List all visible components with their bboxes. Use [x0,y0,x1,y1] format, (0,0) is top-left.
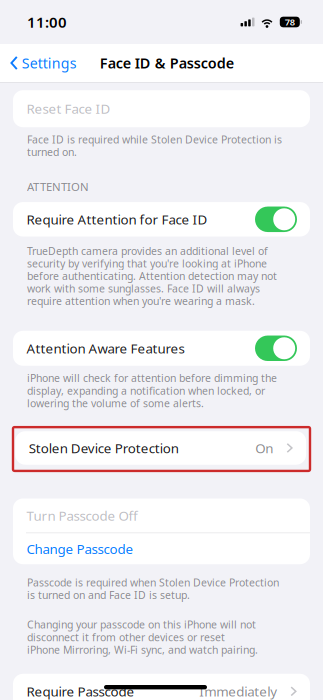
staticText: Reset Face ID [26,100,110,117]
staticText: ATTENTION [27,179,89,194]
staticText: 11:00 [27,12,67,32]
staticText: Stolen Device Protection [29,439,179,457]
staticText: Attention Aware Features [26,340,184,357]
button[interactable]: Require Passcode [13,674,310,700]
button[interactable]: Turn Passcode Off [13,498,310,532]
staticText: On [255,439,273,457]
staticText: Turn Passcode Off [26,507,137,524]
staticText: Passcode is required when Stolen Device … [27,576,279,601]
staticText: Change Passcode [26,540,133,557]
staticText: Require Passcode [26,683,134,700]
button[interactable]: Reset Face ID [13,90,310,127]
staticText: 78 [285,16,295,28]
staticText: TrueDepth camera provides an additional … [27,245,277,307]
button[interactable]: Change Passcode [13,533,310,564]
staticText: Changing your passcode on this iPhone wi… [27,618,258,656]
staticText: Require Attention for Face ID [26,211,207,228]
button[interactable]: Stolen Device Protection [15,431,306,465]
staticText: Face ID & Passcode [100,54,234,72]
button[interactable]: Settings [0,44,85,82]
staticText: Settings [22,54,77,72]
staticText: iPhone will check for attention before d… [27,372,277,409]
staticText: Face ID is required while Stolen Device … [27,133,282,158]
staticText: Immediately [199,683,277,700]
button[interactable]: Require Attention for Face ID [255,207,297,232]
button[interactable]: Attention Aware Features [255,335,297,361]
